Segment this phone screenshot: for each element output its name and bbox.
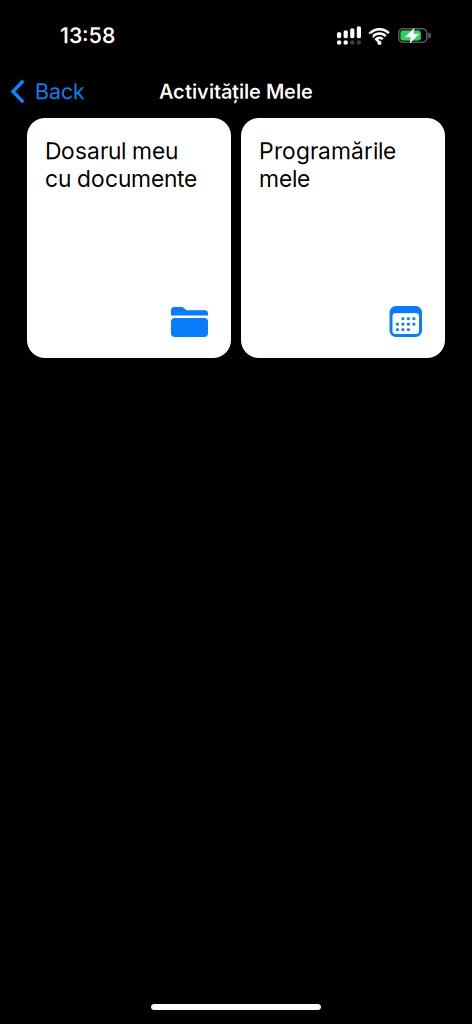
- button[interactable]: Back: [0, 78, 85, 104]
- staticText: Activitățile Mele: [159, 79, 313, 104]
- staticText: Programările mele: [259, 137, 396, 193]
- button[interactable]: Dosarul meu cu documente: [27, 118, 231, 358]
- staticText: Back: [35, 78, 85, 104]
- button[interactable]: Programările mele: [241, 118, 445, 358]
- staticText: 13:58: [60, 23, 115, 48]
- staticText: Dosarul meu cu documente: [45, 137, 197, 193]
